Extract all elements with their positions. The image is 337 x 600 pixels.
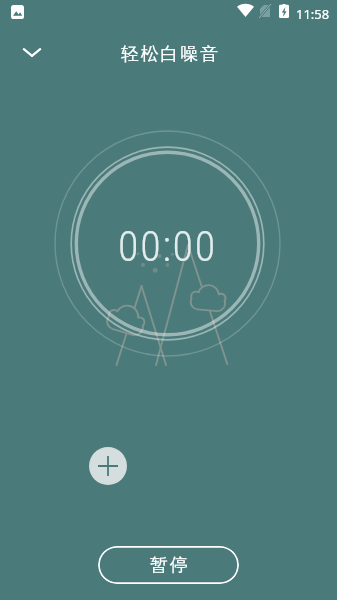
staticText: 11:58 — [296, 5, 330, 23]
button[interactable]: Collapse — [10, 30, 54, 74]
staticText: 轻松白噪音 — [120, 43, 219, 66]
staticText: 暂停 — [150, 554, 190, 577]
button[interactable]: Add sound — [89, 447, 127, 485]
button[interactable]: 暂停 — [98, 546, 239, 584]
staticText: 00:00 — [0, 222, 336, 271]
